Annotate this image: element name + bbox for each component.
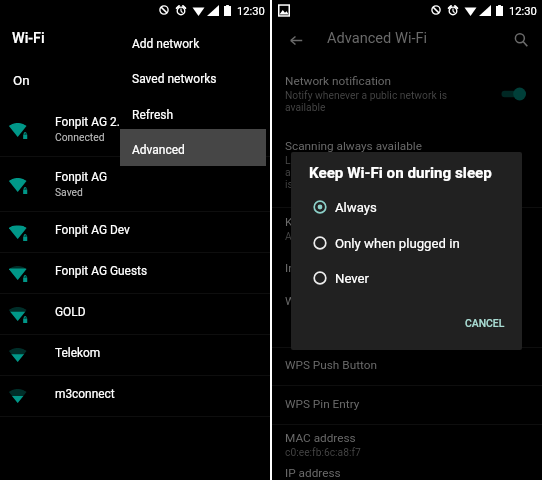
staticText: Fonpit AG — [55, 170, 107, 184]
staticText: Fonpit AG Guests — [55, 264, 148, 278]
staticText: Saved networks — [132, 72, 217, 86]
staticText: CANCEL — [465, 317, 505, 329]
staticText: Wi-Fi Direct — [285, 294, 345, 308]
button[interactable]: Scanning always available — [272, 139, 542, 189]
staticText: Let Google's location service and other … — [285, 154, 471, 190]
button[interactable]: Refresh — [120, 100, 266, 130]
button[interactable]: Wi-Fi Direct — [272, 294, 542, 308]
button[interactable]: Saved networks — [120, 64, 266, 94]
staticText: Scanning always available — [285, 139, 422, 153]
staticText: WPS Pin Entry — [285, 397, 360, 411]
staticText: Keep Wi-Fi on during sleep — [285, 215, 424, 229]
staticText: IP address — [285, 466, 341, 480]
button[interactable]: Fonpit AG Dev — [0, 212, 270, 253]
button[interactable]: Add network — [120, 29, 266, 59]
staticText: Saved — [55, 186, 83, 198]
staticText: Install certificates — [285, 261, 379, 275]
staticText: Advanced — [132, 143, 185, 157]
staticText: Notify whenever a public network is avai… — [285, 89, 448, 113]
staticText: Keep Wi-Fi on during sleep — [309, 164, 492, 182]
staticText: Connected — [55, 131, 105, 143]
staticText: Fonpit AG Dev — [55, 223, 130, 237]
staticText: Never — [335, 271, 370, 286]
staticText: Telekom — [55, 346, 101, 360]
button[interactable]: Keep Wi-Fi on during sleep — [272, 215, 542, 241]
button[interactable]: GOLD — [0, 294, 270, 335]
staticText: Advanced Wi-Fi — [327, 29, 428, 46]
staticText: Refresh — [132, 108, 174, 122]
staticText: GOLD — [55, 305, 86, 319]
staticText: Always — [285, 230, 318, 242]
button[interactable]: Fonpit AG 2. — [0, 102, 270, 157]
staticText: 12:30 — [237, 5, 265, 18]
button[interactable]: Install certificates — [272, 261, 542, 275]
button[interactable]: Always — [291, 193, 522, 221]
staticText: WPS Push Button — [285, 358, 377, 372]
staticText: m3connect — [55, 387, 115, 401]
button[interactable]: Search — [505, 24, 537, 56]
button[interactable]: Never — [291, 264, 522, 292]
button[interactable]: WPS Pin Entry — [272, 397, 542, 411]
staticText: 12:30 — [509, 5, 537, 18]
button[interactable]: WPS Push Button — [272, 358, 542, 372]
button[interactable]: IP address — [272, 466, 542, 480]
staticText: MAC address — [285, 431, 356, 445]
button[interactable]: MAC address — [272, 431, 542, 457]
staticText: Add network — [132, 37, 200, 51]
staticText: Network notification — [285, 74, 392, 88]
staticText: c0:ee:fb:6c:a8:f7 — [285, 446, 361, 458]
button[interactable]: Fonpit AG — [0, 157, 270, 212]
button[interactable]: m3connect — [0, 376, 270, 417]
button[interactable]: Network notification — [272, 74, 542, 112]
button[interactable]: Telekom — [0, 335, 270, 376]
button[interactable]: CANCEL — [459, 313, 511, 333]
button[interactable]: Advanced — [120, 135, 266, 165]
staticText: Only when plugged in — [335, 236, 460, 251]
button[interactable]: Only when plugged in — [291, 229, 522, 257]
staticText: Wi-Fi — [12, 30, 45, 47]
staticText: On — [13, 73, 30, 89]
button[interactable]: Back — [280, 24, 312, 56]
staticText: Always — [335, 200, 377, 215]
button[interactable]: Fonpit AG Guests — [0, 253, 270, 294]
staticText: Fonpit AG 2. — [55, 115, 120, 129]
